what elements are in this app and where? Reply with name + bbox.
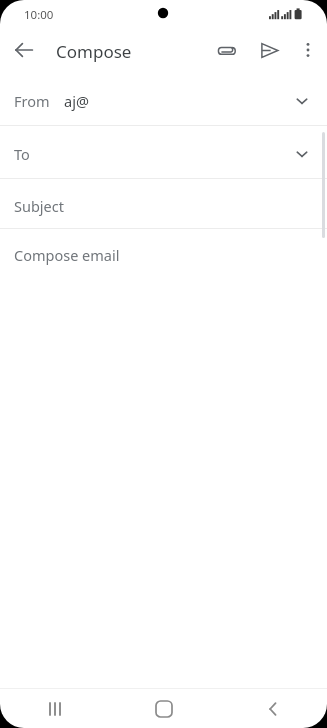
staticText: To [14,144,30,164]
button[interactable]: Recent apps [0,689,109,728]
staticText: Compose [56,40,132,63]
button[interactable]: Back [218,689,327,728]
staticText: Subject [14,196,64,216]
staticText: Compose email [14,245,120,265]
button[interactable]: Back [10,36,38,64]
button[interactable]: From [0,72,327,125]
button[interactable]: Subject [0,179,327,228]
button[interactable]: Compose email [0,229,327,289]
staticText: aj@ [64,91,89,111]
button[interactable]: To [0,126,327,178]
button[interactable]: Attach file [212,36,240,64]
button[interactable]: Send [255,36,283,64]
button[interactable]: Home [109,689,218,728]
staticText: From [14,91,50,111]
button[interactable]: More options [294,36,322,64]
staticText: 10:00 [24,7,54,23]
